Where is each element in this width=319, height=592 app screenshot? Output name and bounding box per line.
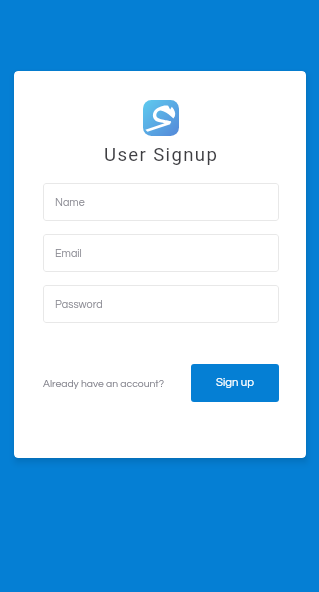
- button[interactable]: Already have an account?: [43, 378, 164, 389]
- button[interactable]: Email: [43, 234, 279, 272]
- staticText: Email: [55, 248, 82, 259]
- other: App logo: [143, 100, 179, 136]
- staticText: User Signup: [104, 144, 219, 166]
- button[interactable]: Name: [43, 183, 279, 221]
- staticText: Name: [55, 197, 85, 208]
- staticText: Password: [55, 299, 103, 310]
- staticText: Sign up: [216, 377, 254, 389]
- button[interactable]: Sign up: [191, 364, 279, 402]
- button[interactable]: Password: [43, 285, 279, 323]
